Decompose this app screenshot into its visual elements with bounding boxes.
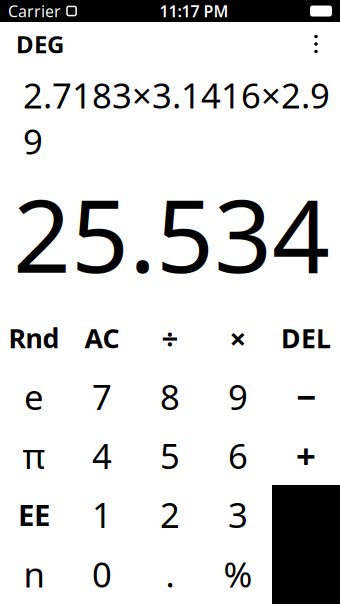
staticText: +: [296, 432, 316, 478]
button[interactable]: AC: [68, 309, 136, 367]
staticText: 7: [92, 373, 112, 419]
staticText: AC: [84, 320, 119, 356]
button[interactable]: 5: [136, 426, 204, 485]
button[interactable]: 2: [136, 485, 204, 544]
button[interactable]: .: [136, 544, 204, 604]
staticText: %: [223, 551, 252, 597]
staticText: 5: [160, 432, 180, 478]
staticText: ÷: [161, 318, 178, 357]
button[interactable]: +: [272, 426, 340, 485]
button[interactable]: ×: [204, 309, 272, 367]
button[interactable]: π: [0, 426, 68, 485]
button[interactable]: EE: [0, 485, 68, 544]
button[interactable]: %: [204, 544, 272, 604]
staticText: Carrier: [8, 0, 61, 22]
staticText: 2.7183×3.1416×2.99: [23, 72, 330, 164]
staticText: 3: [228, 491, 248, 537]
staticText: e: [24, 373, 44, 419]
button[interactable]: 7: [68, 367, 136, 426]
button[interactable]: 3: [204, 485, 272, 544]
staticText: 4: [92, 432, 112, 478]
button[interactable]: 4: [68, 426, 136, 485]
staticText: 9: [228, 373, 248, 419]
staticText: DEG: [16, 28, 64, 60]
button[interactable]: 8: [136, 367, 204, 426]
staticText: 8: [160, 373, 180, 419]
staticText: ×: [229, 318, 246, 357]
staticText: 6: [228, 432, 248, 478]
staticText: −: [296, 373, 316, 419]
staticText: 1: [92, 491, 112, 537]
button[interactable]: Rnd: [0, 309, 68, 367]
button[interactable]: 1: [68, 485, 136, 544]
staticText: 11:17 PM: [159, 0, 228, 22]
staticText: EE: [18, 495, 50, 534]
button[interactable]: n: [0, 544, 68, 604]
button[interactable]: 6: [204, 426, 272, 485]
button[interactable]: 0: [68, 544, 136, 604]
button[interactable]: DEG: [0, 20, 80, 68]
button[interactable]: DEL: [272, 309, 340, 367]
button[interactable]: −: [272, 367, 340, 426]
button[interactable]: ÷: [136, 309, 204, 367]
staticText: 0: [92, 551, 112, 597]
staticText: 2: [160, 491, 180, 537]
button[interactable]: 9: [204, 367, 272, 426]
staticText: .: [165, 551, 174, 597]
staticText: 25.534: [13, 166, 330, 301]
button[interactable]: e: [0, 367, 68, 426]
staticText: Rnd: [8, 320, 59, 356]
button[interactable]: More options: [296, 24, 336, 64]
staticText: DEL: [281, 320, 331, 356]
staticText: π: [22, 432, 45, 478]
staticText: n: [23, 551, 44, 597]
